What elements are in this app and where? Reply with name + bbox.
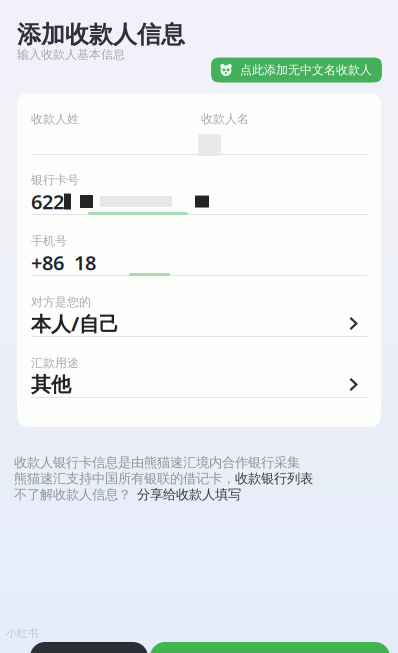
staticText: 本人/自己 [31,310,119,337]
staticText: 其他 [31,372,71,397]
staticText: +86 18 [31,249,96,276]
staticText: 熊猫速汇支持中国所有银联的借记卡， [14,470,235,487]
staticText: 添加收款人信息 [17,20,185,49]
staticText: 对方是您的 [31,295,91,309]
button[interactable]: 下一步 [150,642,390,653]
staticText: 小红书 [6,627,39,640]
staticText: 点此添加无中文名收款人 [240,63,372,77]
staticText: 汇款用途 [31,356,79,370]
button[interactable]: 点此添加无中文名收款人 [211,57,382,82]
staticText: 输入收款人基本信息 [17,47,125,62]
button[interactable]: 收款银行列表 [235,470,313,487]
button[interactable]: 汇款用途 [31,356,367,417]
staticText: 收款银行列表 [235,470,313,487]
staticText: 收款人姓 [31,112,79,126]
staticText: 银行卡号 [31,173,79,187]
staticText: 手机号 [31,234,67,248]
staticText: 622 [31,188,64,215]
staticText: 分享给收款人填写 [137,486,241,503]
staticText: 收款人名 [201,112,249,126]
button[interactable]: 上一步 [30,642,148,653]
staticText: 收款人银行卡信息是由熊猫速汇境内合作银行采集 [14,454,300,471]
button[interactable]: 对方是您的 [31,295,367,356]
staticText: 不了解收款人信息？ [14,486,131,503]
button[interactable]: 分享给收款人填写 [137,486,241,503]
